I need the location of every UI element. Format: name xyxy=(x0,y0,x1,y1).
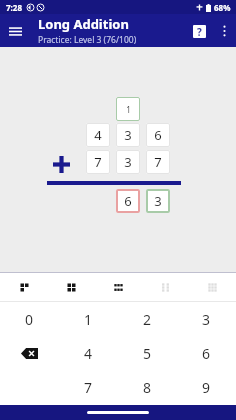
staticText: 4 xyxy=(94,126,102,144)
staticText: 6 xyxy=(202,344,211,363)
staticText: 3 xyxy=(202,310,211,329)
button[interactable]: 2 xyxy=(118,302,177,336)
button[interactable]: Open navigation menu xyxy=(0,16,30,46)
button[interactable]: 1 xyxy=(116,97,140,121)
staticText: 2 xyxy=(143,310,152,329)
button[interactable]: 3 xyxy=(177,302,236,336)
staticText: 5 xyxy=(143,344,152,363)
staticText: 6 xyxy=(124,192,132,210)
button[interactable]: More options xyxy=(212,19,236,43)
staticText: ? xyxy=(197,25,202,38)
staticText: 4 xyxy=(84,344,93,363)
button[interactable]: Difficulty level 2 xyxy=(48,273,95,301)
button[interactable]: 0 xyxy=(0,302,59,336)
button[interactable]: 9 xyxy=(177,370,236,404)
button[interactable]: Difficulty level 1 xyxy=(0,273,48,301)
staticText: 7 xyxy=(84,378,93,397)
staticText: 68% xyxy=(214,2,231,13)
staticText: 3 xyxy=(124,126,132,144)
staticText: 6 xyxy=(154,126,162,144)
staticText: 7 xyxy=(94,153,102,171)
staticText: Practice: Level 3 (76/100) xyxy=(38,34,137,46)
staticText: 3 xyxy=(124,153,132,171)
button[interactable]: 3 xyxy=(146,189,170,213)
button[interactable]: Help xyxy=(186,18,212,44)
button[interactable]: 1 xyxy=(59,302,118,336)
staticText: 1 xyxy=(84,310,93,329)
button[interactable]: Difficulty level 3 xyxy=(95,273,142,301)
button[interactable]: 3 xyxy=(116,123,140,147)
button[interactable]: 6 xyxy=(116,189,140,213)
button[interactable]: 3 xyxy=(116,150,140,174)
staticText: Long Addition xyxy=(38,15,129,33)
button[interactable]: Difficulty level 4 xyxy=(142,273,189,301)
button[interactable]: 7 xyxy=(59,370,118,404)
staticText: 8 xyxy=(143,378,152,397)
button[interactable]: Difficulty level 5 xyxy=(189,273,236,301)
staticText: 0 xyxy=(25,310,34,329)
button[interactable]: 7 xyxy=(86,150,110,174)
button[interactable]: 4 xyxy=(86,123,110,147)
staticText: 7 xyxy=(154,153,162,171)
button[interactable]: 8 xyxy=(118,370,177,404)
staticText: 3 xyxy=(154,192,162,210)
button[interactable]: 7 xyxy=(146,150,170,174)
button[interactable]: Backspace xyxy=(0,336,59,370)
staticText: 7:28 xyxy=(6,2,22,13)
button[interactable]: 6 xyxy=(146,123,170,147)
button[interactable]: 5 xyxy=(118,336,177,370)
button[interactable]: 6 xyxy=(177,336,236,370)
staticText: 1 xyxy=(126,104,131,115)
button[interactable]: 4 xyxy=(59,336,118,370)
staticText: 9 xyxy=(202,378,211,397)
